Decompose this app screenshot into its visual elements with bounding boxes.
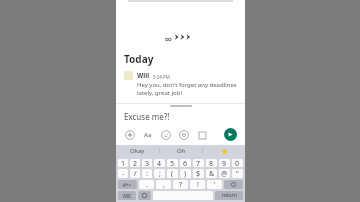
button[interactable]: Emoji — [160, 129, 172, 141]
staticText: 6 — [183, 159, 188, 167]
staticText: return — [222, 192, 237, 199]
button[interactable]: ' — [207, 180, 222, 189]
staticText: . — [146, 180, 148, 189]
button[interactable]: 8 — [206, 159, 217, 167]
button[interactable]: - — [118, 169, 128, 178]
staticText: 4 — [157, 159, 162, 167]
staticText: 5:24 PM — [153, 74, 170, 80]
button[interactable]: ! — [190, 180, 205, 189]
button[interactable]: Will — [116, 70, 245, 98]
staticText: ' — [214, 180, 216, 189]
staticText: & — [209, 169, 215, 178]
button[interactable]: return — [215, 191, 243, 200]
staticText: , — [163, 180, 165, 189]
staticText: Okay — [130, 147, 145, 155]
button[interactable]: Emoji suggestion — [203, 145, 245, 157]
staticText: 9 — [222, 159, 227, 167]
button[interactable]: & — [206, 169, 217, 178]
staticText: 7 — [196, 159, 201, 167]
button[interactable]: 1 — [118, 159, 128, 167]
button[interactable]: 5 — [167, 159, 178, 167]
button[interactable]: : — [142, 169, 152, 178]
staticText: Excuse me?! — [124, 111, 170, 122]
button[interactable]: #+= — [118, 180, 137, 189]
button[interactable]: ; — [154, 169, 165, 178]
button[interactable]: Emoji keyboard — [138, 191, 151, 200]
staticText: ; — [159, 169, 161, 178]
staticText: : — [146, 169, 148, 178]
button[interactable]: ? — [173, 180, 188, 189]
button[interactable]: 9 — [219, 159, 230, 167]
button[interactable]: 3 — [142, 159, 152, 167]
staticText: ? — [179, 180, 183, 189]
button[interactable]: Send — [224, 128, 237, 141]
staticText: ! — [197, 180, 199, 189]
button[interactable]: 4 — [154, 159, 165, 167]
staticText: Today — [124, 52, 154, 66]
button[interactable]: Okay — [116, 145, 159, 157]
staticText: " — [236, 169, 239, 178]
button[interactable]: Mention — [178, 129, 190, 141]
staticText: ) — [184, 169, 187, 178]
button[interactable]: / — [130, 169, 140, 178]
staticText: ABC — [123, 193, 132, 199]
staticText: 1 — [121, 159, 126, 167]
button[interactable]: 0 — [232, 159, 243, 167]
staticText: 8 — [209, 159, 214, 167]
staticText: $ — [196, 169, 201, 178]
staticText: Oh — [177, 147, 186, 155]
staticText: 5 — [170, 159, 175, 167]
button[interactable]: Backspace — [224, 180, 243, 189]
button[interactable]: . — [139, 180, 154, 189]
staticText: 2 — [133, 159, 138, 167]
staticText: @ — [221, 169, 228, 178]
button[interactable]: 7 — [193, 159, 204, 167]
button[interactable]: 2 — [130, 159, 140, 167]
button[interactable]: , — [156, 180, 171, 189]
button[interactable]: Format text — [142, 129, 154, 141]
button[interactable]: " — [232, 169, 243, 178]
button[interactable]: $ — [193, 169, 204, 178]
button[interactable]: Oh — [160, 145, 202, 157]
button[interactable]: 6 — [180, 159, 191, 167]
staticText: Hey you, don't forget any deadlines late… — [137, 81, 239, 97]
button[interactable]: Attach — [124, 129, 136, 141]
staticText: - — [122, 169, 125, 178]
staticText: #+= — [123, 182, 132, 188]
staticText: Aa — [144, 131, 152, 139]
staticText: 3 — [145, 159, 150, 167]
staticText: Will — [137, 71, 150, 80]
staticText: / — [134, 169, 137, 178]
staticText: ( — [171, 169, 174, 178]
button[interactable]: @ — [219, 169, 230, 178]
button[interactable]: Shortcuts — [196, 129, 208, 141]
button[interactable]: ( — [167, 169, 178, 178]
button[interactable]: ABC — [118, 191, 136, 200]
button[interactable]: ) — [180, 169, 191, 178]
staticText: 0 — [235, 159, 240, 167]
